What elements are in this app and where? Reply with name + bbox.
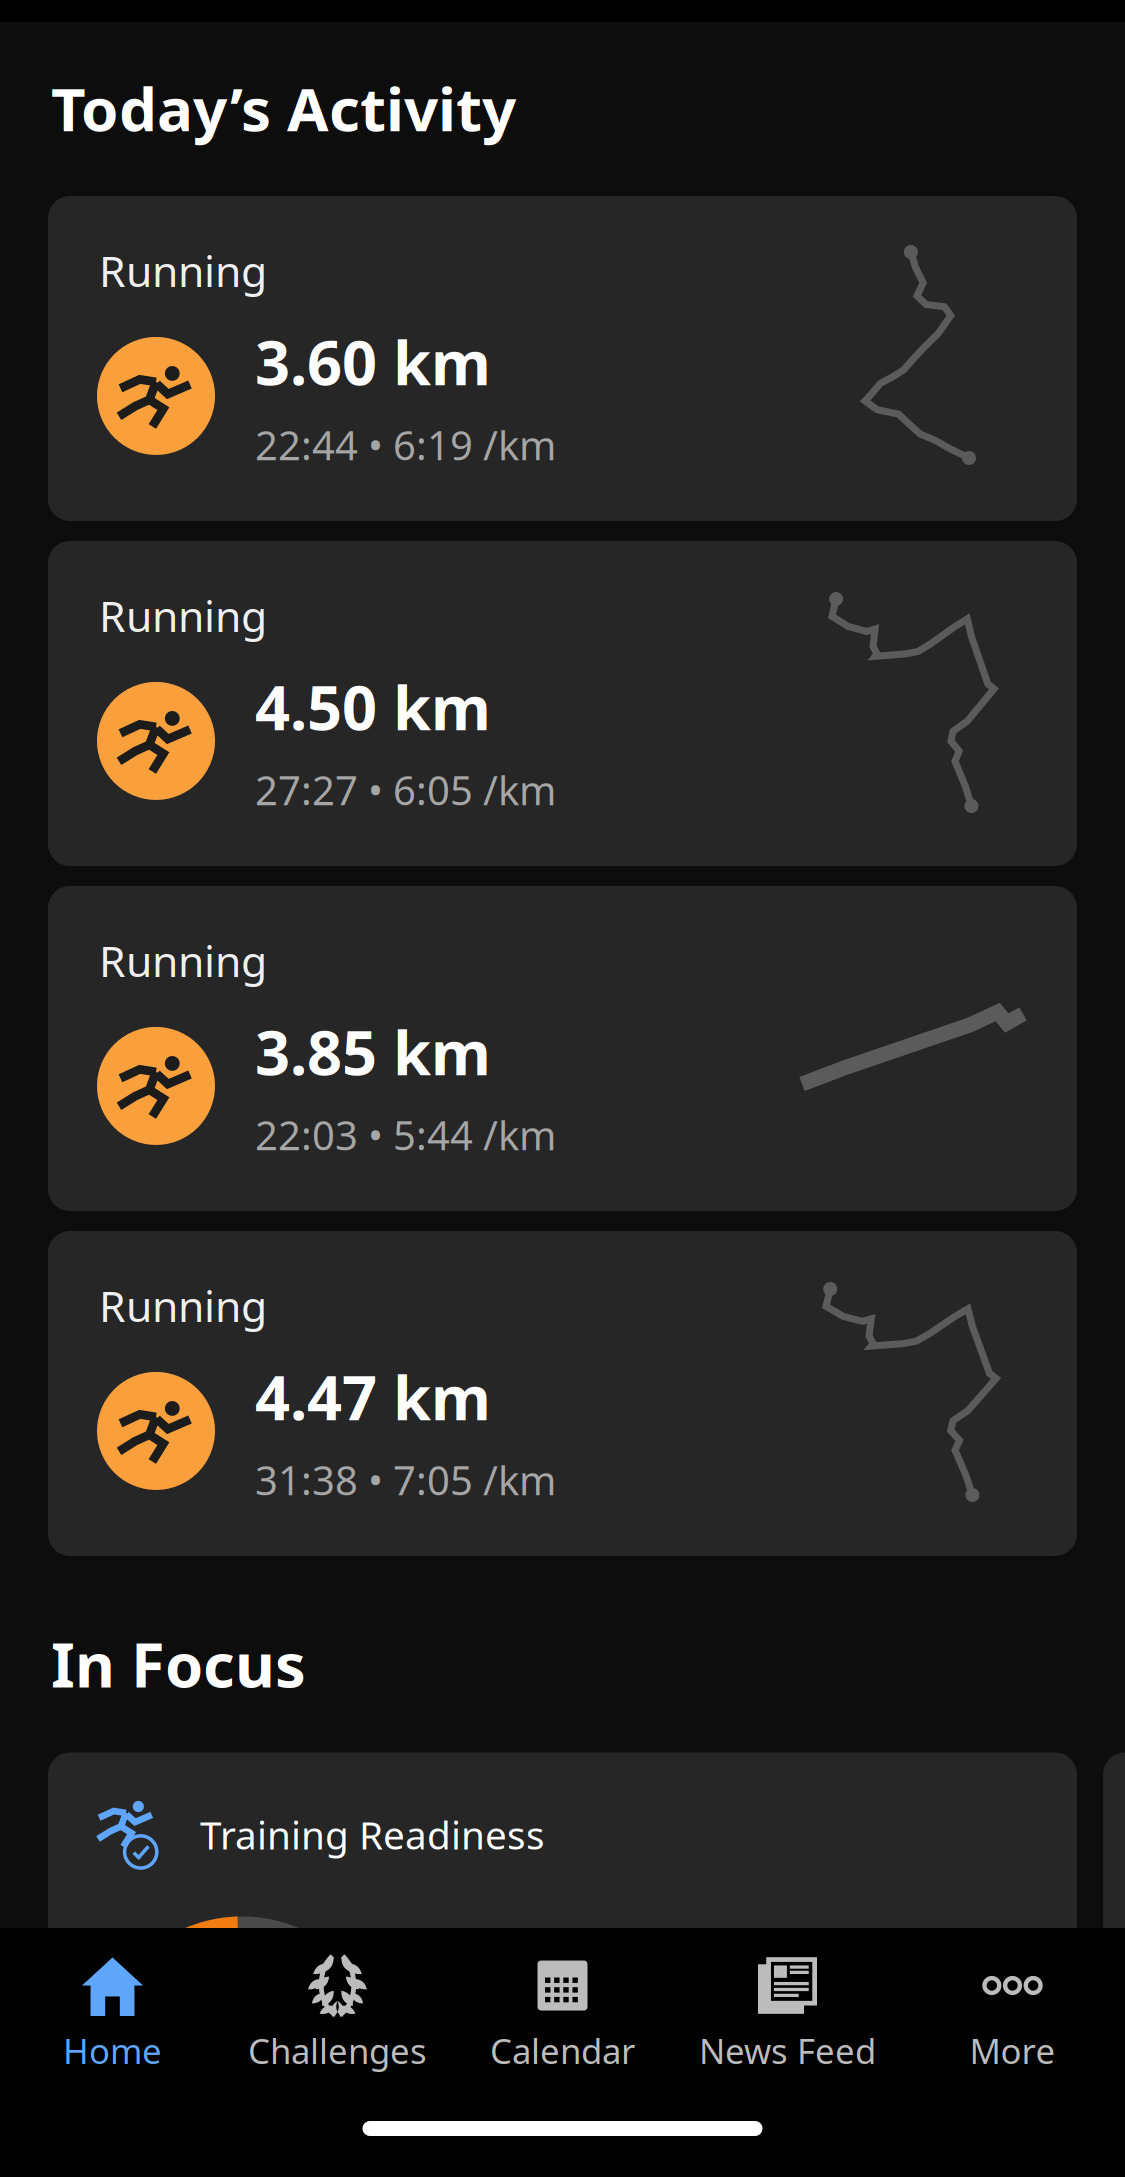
- button[interactable]: Training Readiness: [48, 1752, 1077, 2052]
- staticText: Today’s Activity: [51, 68, 516, 148]
- button[interactable]: Calendar: [450, 1939, 675, 2091]
- staticText: 4.50 km: [255, 666, 491, 747]
- button[interactable]: More: [900, 1939, 1125, 2091]
- button[interactable]: Home: [0, 1939, 225, 2091]
- staticText: More: [969, 2027, 1055, 2073]
- staticText: News Feed: [699, 2027, 876, 2073]
- staticText: 3.60 km: [255, 321, 491, 402]
- staticText: Training Readiness: [200, 1809, 545, 1860]
- staticText: 22:03 • 5:44 /km: [255, 1108, 556, 1161]
- button[interactable]: Running: [48, 541, 1077, 866]
- staticText: 27:27 • 6:05 /km: [255, 763, 556, 816]
- staticText: 31:38 • 7:05 /km: [255, 1453, 556, 1506]
- staticText: Calendar: [490, 2027, 635, 2073]
- staticText: In Focus: [51, 1623, 306, 1704]
- staticText: 4.47 km: [255, 1356, 491, 1437]
- button[interactable]: Running: [48, 1231, 1077, 1556]
- staticText: Home: [63, 2027, 162, 2073]
- staticText: Challenges: [248, 2027, 427, 2073]
- staticText: Running: [99, 242, 267, 299]
- staticText: 3.85 km: [255, 1011, 491, 1092]
- staticText: Running: [99, 1277, 267, 1334]
- button[interactable]: Running: [48, 196, 1077, 521]
- button[interactable]: Running: [48, 886, 1077, 1211]
- staticText: Running: [99, 587, 267, 644]
- button[interactable]: News Feed: [675, 1939, 900, 2091]
- button[interactable]: Challenges: [225, 1939, 450, 2091]
- staticText: 22:44 • 6:19 /km: [255, 418, 556, 471]
- staticText: Running: [99, 932, 267, 989]
